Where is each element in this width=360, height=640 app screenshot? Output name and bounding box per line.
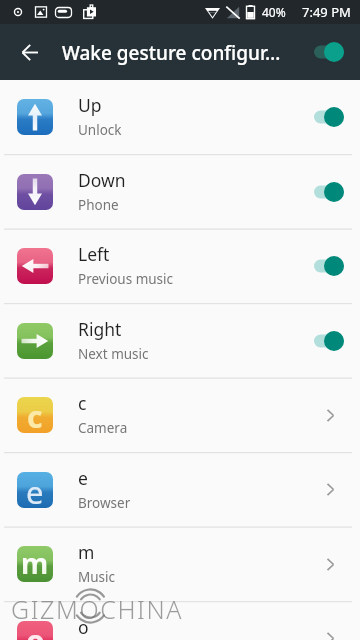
staticText: m xyxy=(78,540,95,564)
staticText: e xyxy=(26,472,44,507)
staticText: Down xyxy=(78,168,126,192)
staticText: Browser xyxy=(78,494,131,512)
staticText: m xyxy=(21,546,49,580)
staticText: Previous music xyxy=(78,270,174,288)
staticText: Right xyxy=(78,317,122,341)
staticText: Up xyxy=(78,93,102,117)
staticText: o xyxy=(78,615,89,639)
staticText: Next music xyxy=(78,345,149,363)
button[interactable]: Enable wake gestures xyxy=(302,24,360,80)
button[interactable]: Navigate up xyxy=(0,24,57,80)
button[interactable]: Toggle Right xyxy=(309,303,359,378)
button[interactable]: m xyxy=(0,527,360,601)
button[interactable]: Toggle Up xyxy=(309,80,359,154)
staticText: Phone xyxy=(78,196,119,214)
staticText: 40% xyxy=(262,4,286,20)
button[interactable]: Right xyxy=(0,303,360,378)
staticText: Unlock xyxy=(78,121,122,139)
staticText: Music xyxy=(78,568,116,586)
staticText: Wake gesture configur… xyxy=(62,40,302,66)
button[interactable]: Toggle Left xyxy=(309,229,359,303)
staticText: GIZMOCHINA xyxy=(11,592,184,626)
button[interactable]: Toggle Down xyxy=(309,154,359,229)
staticText: e xyxy=(78,466,88,490)
button[interactable]: Left xyxy=(0,229,360,303)
staticText: Camera xyxy=(78,419,128,437)
button[interactable]: o xyxy=(0,601,360,640)
button[interactable]: c xyxy=(0,378,360,452)
button[interactable]: Down xyxy=(0,154,360,229)
staticText: o xyxy=(26,621,45,640)
staticText: c xyxy=(27,397,43,432)
staticText: c xyxy=(78,391,87,415)
staticText: Left xyxy=(78,242,110,266)
staticText: 7:49 PM xyxy=(302,3,351,21)
button[interactable]: Up xyxy=(0,80,360,154)
button[interactable]: e xyxy=(0,452,360,527)
